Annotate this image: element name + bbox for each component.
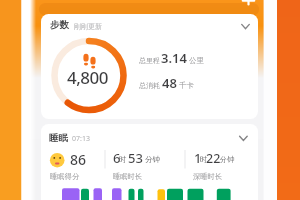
staticText: 3.14 — [161, 49, 187, 67]
staticText: 分钟 — [220, 155, 235, 164]
staticText: 千卡 — [179, 81, 194, 90]
staticText: 刚刚更新 — [74, 22, 102, 31]
staticText: 1 — [194, 149, 202, 167]
staticText: 深睡时长 — [193, 172, 223, 181]
staticText: 22 — [206, 150, 221, 167]
staticText: 4,800 — [67, 66, 109, 89]
staticText: 6 — [113, 149, 121, 167]
staticText: 48 — [162, 74, 177, 92]
staticText: 公里 — [189, 56, 204, 65]
staticText: 07:13 — [72, 134, 90, 144]
staticText: 86 — [70, 150, 87, 169]
button[interactable] — [240, 0, 257, 10]
staticText: 睡眠时长 — [113, 172, 143, 181]
button[interactable] — [41, 124, 258, 200]
staticText: 时 — [119, 155, 127, 164]
staticText: 总里程 — [139, 56, 160, 65]
staticText: 53 — [128, 149, 143, 167]
staticText: 总消耗 — [139, 81, 160, 90]
staticText: 时 — [200, 155, 208, 164]
staticText: 睡眠得分 — [50, 172, 80, 181]
staticText: 睡眠 — [49, 132, 68, 144]
staticText: 步数 — [50, 19, 69, 31]
staticText: 分钟 — [145, 155, 160, 164]
button[interactable] — [41, 14, 258, 119]
